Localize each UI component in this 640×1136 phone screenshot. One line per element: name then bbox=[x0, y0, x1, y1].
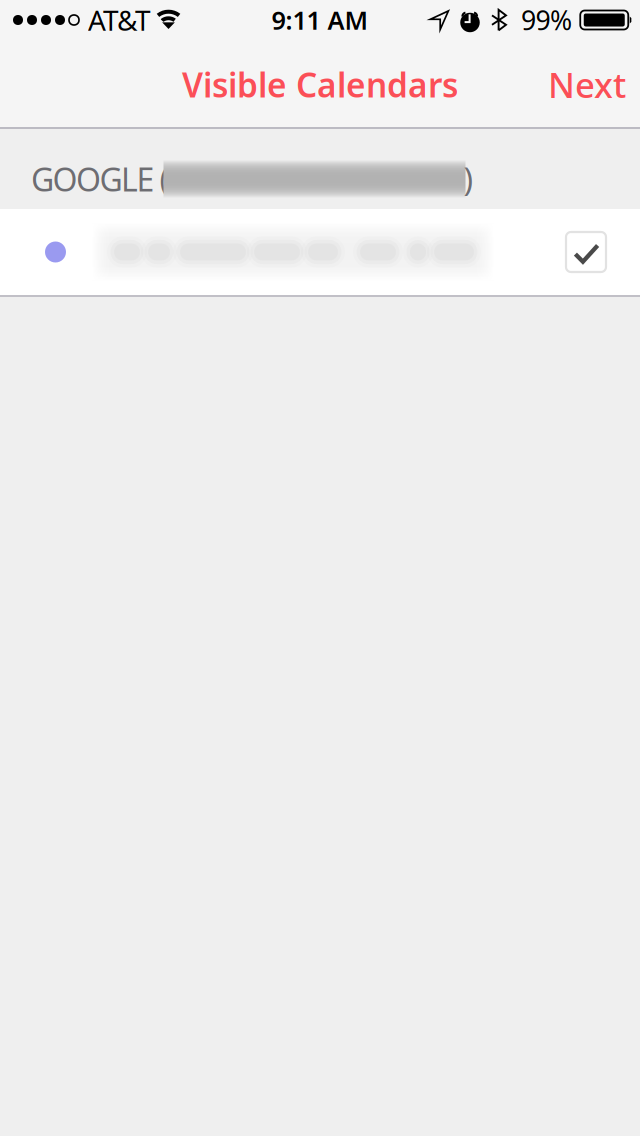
button[interactable] bbox=[0, 209, 640, 295]
staticText: 99% bbox=[521, 2, 572, 38]
staticText: GOOGLE ( bbox=[31, 158, 169, 200]
staticText: ) bbox=[463, 158, 473, 200]
staticText: AT&T bbox=[88, 1, 151, 39]
button[interactable]: Next bbox=[538, 49, 636, 119]
staticText: 9:11 AM bbox=[271, 3, 368, 37]
staticText: Next bbox=[548, 61, 626, 107]
staticText: Visible Calendars bbox=[182, 62, 458, 107]
